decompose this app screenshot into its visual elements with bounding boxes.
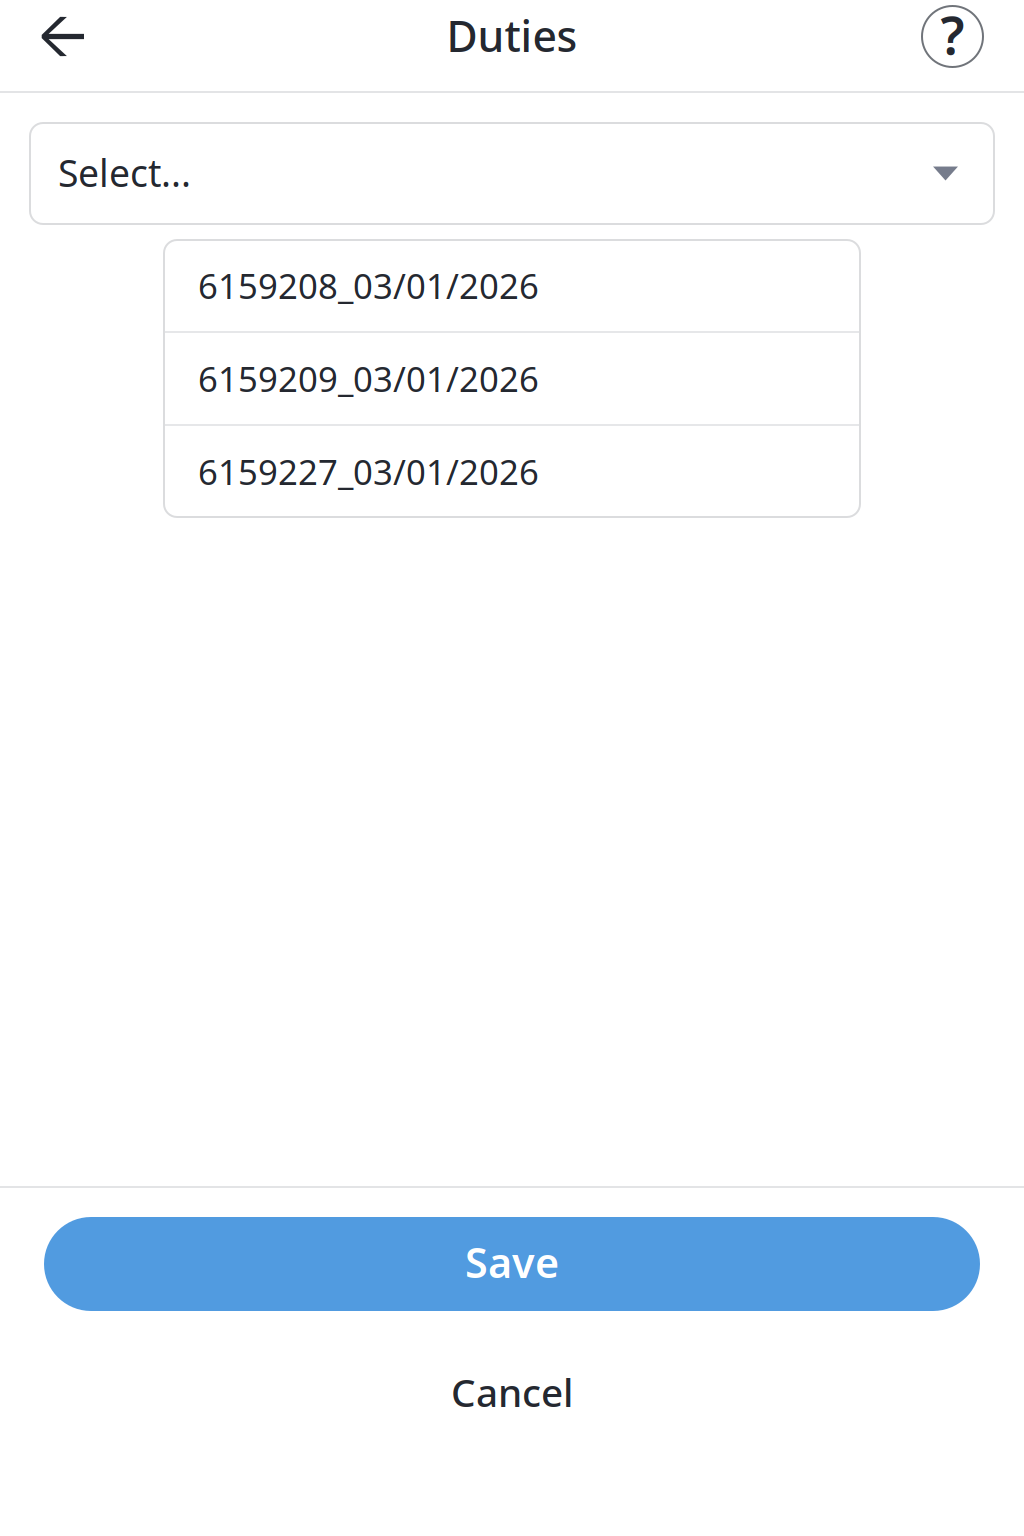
button[interactable]: 6159209_03/01/2026 <box>164 333 860 424</box>
button[interactable]: Save <box>44 1217 980 1311</box>
button[interactable]: 6159227_03/01/2026 <box>164 426 860 517</box>
button[interactable]: Cancel <box>0 1362 1024 1422</box>
button[interactable]: 6159208_03/01/2026 <box>164 240 860 331</box>
staticText: 6159227_03/01/2026 <box>198 448 539 494</box>
button[interactable]: Select... <box>30 123 994 224</box>
button[interactable]: Help <box>892 0 1024 90</box>
staticText: Save <box>465 1235 559 1289</box>
staticText: 6159208_03/01/2026 <box>198 262 539 308</box>
staticText: Cancel <box>451 1366 573 1418</box>
staticText: Duties <box>446 7 577 64</box>
staticText: 6159209_03/01/2026 <box>198 355 539 401</box>
staticText: ? <box>940 0 964 69</box>
staticText: Select... <box>58 148 191 197</box>
button[interactable]: Back <box>0 0 114 90</box>
